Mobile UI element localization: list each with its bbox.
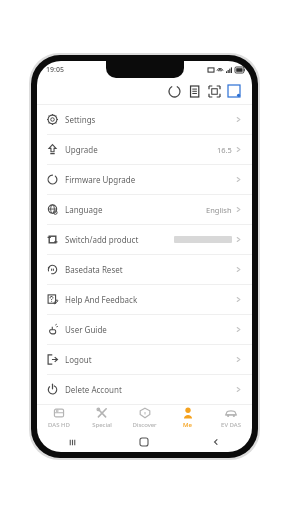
button[interactable]: Language	[37, 195, 252, 225]
staticText: Settings	[65, 114, 96, 125]
staticText: Delete Account	[65, 384, 122, 395]
staticText: English	[206, 205, 232, 215]
staticText: 16.5	[217, 145, 232, 155]
button[interactable]: Switch/add product	[37, 225, 252, 255]
staticText: Switch/add product	[65, 234, 139, 245]
staticText: Help And Feedback	[65, 294, 138, 305]
staticText: User Guide	[65, 324, 107, 335]
staticText: Logout	[65, 354, 92, 365]
button[interactable]: Basedata Reset	[37, 255, 252, 285]
staticText: Firmware Upgrade	[65, 174, 136, 185]
staticText: DAS HD	[48, 421, 70, 429]
button[interactable]: Help And Feedback	[37, 285, 252, 315]
staticText: Language	[65, 204, 103, 215]
staticText: Me	[183, 421, 192, 429]
button[interactable]: User Guide	[37, 315, 252, 345]
button[interactable]: Settings	[37, 105, 252, 135]
staticText: Special	[92, 421, 112, 429]
button[interactable]: Me	[166, 404, 209, 432]
button[interactable]: Logout	[37, 345, 252, 375]
button[interactable]: VCI	[224, 81, 244, 101]
staticText: Upgrade	[65, 144, 98, 155]
button[interactable]: EV DAS	[209, 404, 252, 432]
button[interactable]: Special	[80, 404, 123, 432]
staticText: Basedata Reset	[65, 264, 123, 275]
staticText: Discover	[132, 421, 157, 429]
button[interactable]: Delete Account	[37, 375, 252, 404]
staticText: EV DAS	[221, 421, 241, 429]
button[interactable]: Firmware Upgrade	[37, 165, 252, 195]
button[interactable]: Screenshot	[204, 81, 224, 101]
button[interactable]: DAS HD	[37, 404, 80, 432]
staticText: 19:05	[46, 65, 64, 75]
button[interactable]: Upgrade	[37, 135, 252, 165]
button[interactable]: Refresh	[164, 81, 184, 101]
button[interactable]: Notes	[184, 81, 204, 101]
button[interactable]: Discover	[123, 404, 166, 432]
